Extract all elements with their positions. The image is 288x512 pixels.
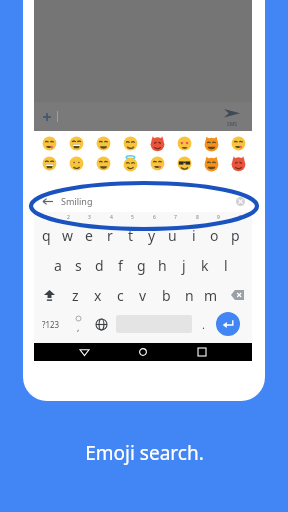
button[interactable] (36, 154, 63, 172)
staticText: m (204, 286, 218, 305)
staticText: 8 (196, 214, 199, 221)
button[interactable] (225, 134, 252, 152)
staticText: 1 (45, 214, 48, 221)
button[interactable]: j (173, 252, 194, 278)
staticText: 0 (239, 214, 242, 221)
button[interactable]: a (47, 252, 68, 278)
staticText: SMS (227, 121, 238, 128)
staticText: Emoji search. (85, 440, 204, 466)
staticText: t (128, 226, 134, 245)
button[interactable] (117, 154, 144, 172)
button[interactable]: s (68, 252, 89, 278)
staticText: p (231, 226, 240, 245)
staticText: d (95, 256, 104, 275)
staticText: a (54, 256, 62, 275)
staticText: n (185, 286, 194, 305)
button[interactable]: d (89, 252, 110, 278)
button[interactable]: z (65, 282, 85, 308)
staticText: r (107, 226, 113, 245)
staticText: z (72, 286, 79, 305)
button[interactable]: b (156, 282, 176, 308)
button[interactable]: o (204, 222, 225, 248)
button[interactable] (63, 154, 90, 172)
button[interactable]: v (133, 282, 153, 308)
staticText: i (192, 226, 196, 245)
button[interactable]: Home (134, 343, 152, 361)
button[interactable]: l (215, 252, 236, 278)
button[interactable] (225, 154, 252, 172)
staticText: b (162, 286, 171, 305)
staticText: l (224, 256, 228, 275)
button[interactable]: y (141, 222, 162, 248)
button[interactable] (171, 154, 198, 172)
staticText: j (182, 256, 186, 275)
button[interactable] (171, 134, 198, 152)
button[interactable]: e (78, 222, 99, 248)
button[interactable]: Send SMS (220, 106, 244, 130)
staticText: s (75, 256, 82, 275)
button[interactable]: r (99, 222, 120, 248)
staticText: v (139, 286, 147, 305)
staticText: g (137, 256, 146, 275)
staticText: e (85, 226, 93, 245)
staticText: 9 (217, 214, 220, 221)
button[interactable]: u (162, 222, 183, 248)
button[interactable]: Back (75, 343, 93, 361)
staticText: x (94, 286, 102, 305)
button[interactable]: q (36, 222, 57, 248)
button[interactable]: t (120, 222, 141, 248)
staticText: o (210, 226, 219, 245)
button[interactable]: Recents (193, 343, 211, 361)
button[interactable] (63, 134, 90, 152)
button[interactable]: Add attachment (42, 112, 52, 122)
button[interactable]: g (131, 252, 152, 278)
button[interactable] (198, 134, 225, 152)
button[interactable] (144, 154, 171, 172)
button[interactable] (198, 154, 225, 172)
button[interactable]: c (110, 282, 130, 308)
staticText: c (117, 286, 124, 305)
button[interactable] (117, 134, 144, 152)
button[interactable]: Add attachment (34, 102, 252, 131)
staticText: . (202, 317, 205, 332)
staticText: u (168, 226, 177, 245)
button[interactable]: Enter (216, 312, 240, 336)
staticText: 5 (131, 214, 134, 221)
button[interactable]: Shift (38, 282, 60, 308)
button[interactable] (90, 134, 117, 152)
button[interactable]: Clear (234, 195, 246, 207)
staticText: w (62, 226, 74, 245)
button[interactable]: f (110, 252, 131, 278)
staticText: ?123 (42, 319, 60, 330)
staticText: k (201, 256, 209, 275)
staticText: 3 (88, 214, 91, 221)
button[interactable]: p (225, 222, 246, 248)
button[interactable]: Back (34, 190, 252, 212)
staticText: 7 (174, 214, 177, 221)
button[interactable]: n (179, 282, 199, 308)
button[interactable]: i (183, 222, 204, 248)
staticText: f (118, 256, 123, 275)
button[interactable]: Comma (68, 311, 88, 337)
button[interactable]: w (57, 222, 78, 248)
staticText: Smiling (61, 195, 93, 207)
button[interactable] (36, 134, 63, 152)
button[interactable]: Back (41, 195, 53, 207)
button[interactable]: k (194, 252, 215, 278)
button[interactable]: Change language (90, 311, 112, 337)
staticText: 4 (110, 214, 113, 221)
staticText: h (158, 256, 167, 275)
button[interactable]: Backspace (226, 282, 248, 308)
button[interactable] (144, 134, 171, 152)
staticText: 6 (153, 214, 156, 221)
button[interactable] (90, 154, 117, 172)
button[interactable]: ?123 (36, 311, 66, 337)
staticText: q (42, 226, 51, 245)
staticText: , (77, 321, 80, 333)
button[interactable]: x (88, 282, 108, 308)
staticText: 2 (67, 214, 70, 221)
button[interactable]: . (194, 311, 212, 337)
button[interactable]: h (152, 252, 173, 278)
button[interactable]: m (201, 282, 221, 308)
